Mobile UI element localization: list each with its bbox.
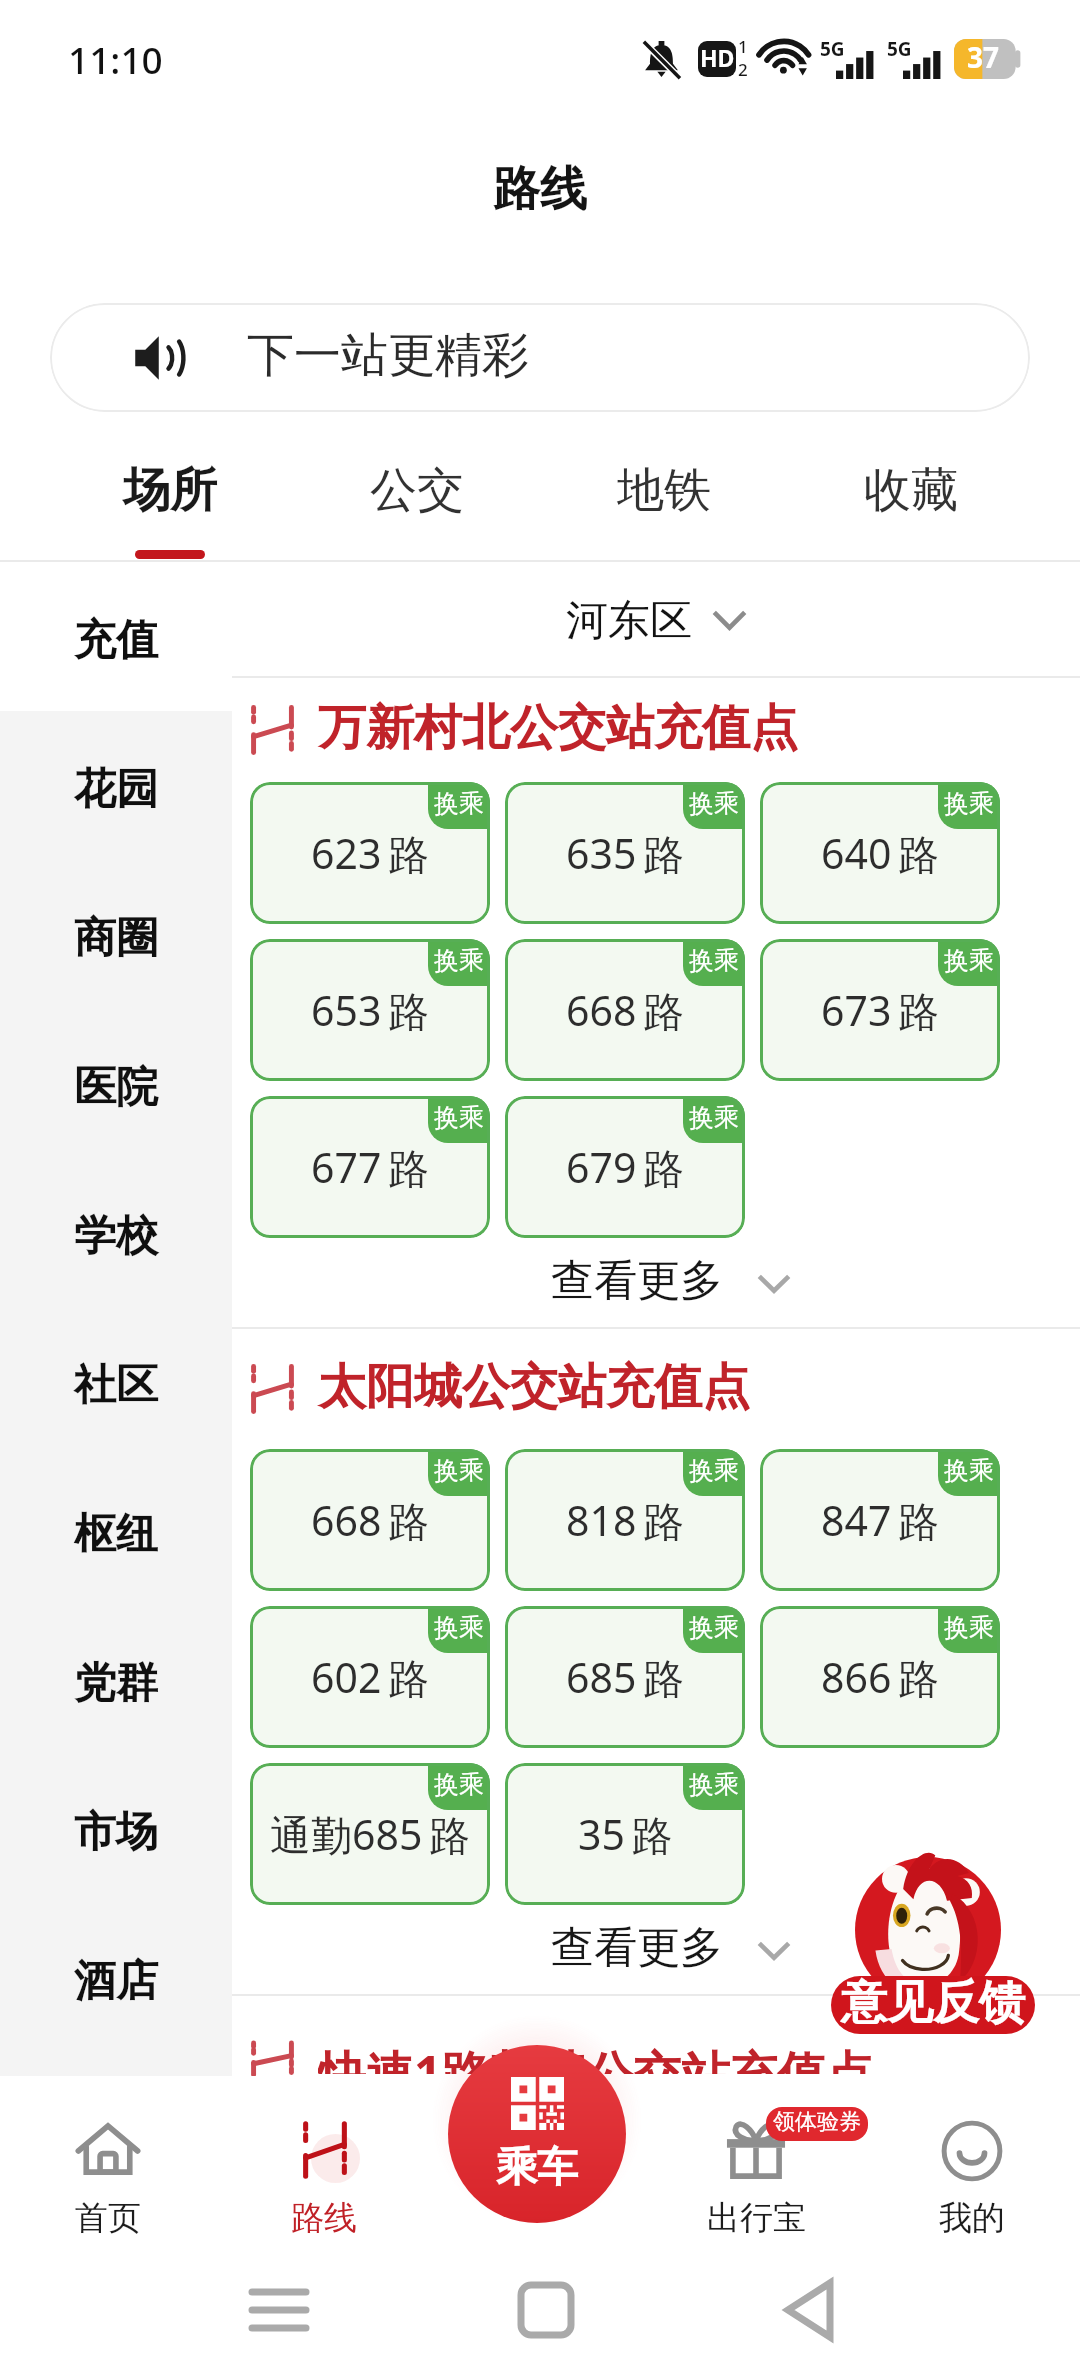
staticText: 换乘 [944, 1612, 994, 1643]
button[interactable]: 路线 [216, 2076, 432, 2258]
staticText: 换乘 [434, 1102, 484, 1133]
staticText: 快速1路某某公交站充值点 [318, 2040, 874, 2074]
staticText: 换乘 [689, 1769, 739, 1800]
staticText: 换乘 [689, 1612, 739, 1643]
button[interactable]: 换乘 [505, 1096, 745, 1238]
button[interactable]: 换乘 [760, 1606, 1000, 1748]
staticText: 866 路 [821, 1649, 940, 1705]
button[interactable]: 换乘 [505, 1763, 745, 1905]
staticText: 602 路 [311, 1649, 430, 1705]
button[interactable]: 换乘 [250, 1763, 490, 1905]
staticText: 35 路 [578, 1806, 673, 1862]
button[interactable]: 换乘 [250, 939, 490, 1081]
button[interactable]: 换乘 [250, 782, 490, 924]
staticText: 出行宝 [707, 2197, 806, 2239]
staticText: 领体验券 [773, 2108, 861, 2136]
button[interactable]: 换乘 [250, 1096, 490, 1238]
staticText: 换乘 [434, 1612, 484, 1643]
staticText: 677 路 [311, 1139, 430, 1195]
staticText: 换乘 [434, 1769, 484, 1800]
button[interactable]: 换乘 [760, 1449, 1000, 1591]
button[interactable]: 场所 [47, 412, 293, 560]
button[interactable]: 换乘 [505, 939, 745, 1081]
staticText: 640 路 [821, 825, 940, 881]
staticText: 下一站更精彩 [247, 326, 529, 385]
button[interactable]: 医院 [0, 1009, 232, 1158]
button[interactable]: 领体验券 [766, 2107, 868, 2141]
button[interactable]: 查看更多 [551, 1256, 791, 1310]
staticText: 公交 [370, 461, 464, 520]
staticText: 路线 [291, 2197, 357, 2239]
button[interactable]: 换乘 [250, 1449, 490, 1591]
button[interactable]: 酒店 [0, 1903, 232, 2052]
staticText: 11:10 [68, 34, 163, 84]
staticText: 635 路 [566, 825, 685, 881]
staticText: 5G [820, 36, 845, 62]
staticText: 换乘 [434, 1455, 484, 1486]
button[interactable]: 河东区 [566, 593, 747, 646]
staticText: 党群 [74, 1657, 158, 1710]
staticText: 673 路 [821, 982, 940, 1038]
button[interactable]: 意见反馈 [828, 1856, 1038, 2034]
staticText: 换乘 [434, 788, 484, 819]
button[interactable]: 换乘 [505, 782, 745, 924]
button[interactable]: 学校 [0, 1158, 232, 1307]
button[interactable]: 查看更多 [551, 1923, 791, 1977]
staticText: 668 路 [311, 1492, 430, 1548]
staticText: 847 路 [821, 1492, 940, 1548]
staticText: 换乘 [434, 945, 484, 976]
staticText: HD [700, 42, 735, 73]
staticText: 679 路 [566, 1139, 685, 1195]
button[interactable]: 市场 [0, 1754, 232, 1903]
button[interactable]: 商圈 [0, 860, 232, 1009]
staticText: 5G [887, 36, 912, 62]
staticText: 充值 [74, 614, 158, 667]
staticText: 2 [738, 58, 748, 81]
staticText: 场所 [123, 461, 217, 520]
button[interactable]: 花园 [0, 711, 232, 860]
button[interactable]: 换乘 [760, 939, 1000, 1081]
staticText: 623 路 [311, 825, 430, 881]
staticText: 意见反馈 [841, 1976, 1025, 2032]
button[interactable]: 乘车 扫码 [448, 2045, 626, 2223]
staticText: 37 [967, 38, 1000, 76]
staticText: 枢纽 [74, 1508, 158, 1561]
staticText: 首页 [75, 2197, 141, 2239]
staticText: 学校 [74, 1210, 158, 1263]
staticText: 酒店 [74, 1955, 158, 2008]
staticText: 查看更多 [551, 1921, 723, 1975]
button[interactable]: 换乘 [250, 1606, 490, 1748]
staticText: 乘车 [496, 2142, 578, 2194]
button[interactable]: 地铁 [540, 412, 787, 560]
button[interactable]: 社区 [0, 1307, 232, 1456]
button[interactable]: 党群 [0, 1605, 232, 1754]
staticText: 收藏 [864, 461, 958, 520]
button[interactable]: 换乘 [760, 782, 1000, 924]
staticText: 查看更多 [551, 1254, 723, 1308]
staticText: 路线 [493, 160, 587, 219]
staticText: 换乘 [689, 788, 739, 819]
button[interactable]: 首页 [0, 2076, 216, 2258]
staticText: 653 路 [311, 982, 430, 1038]
button[interactable]: 充值 [0, 562, 232, 711]
staticText: 河东区 [566, 595, 692, 648]
button[interactable]: 下一站更精彩 [50, 303, 1030, 412]
button[interactable]: 我的 [864, 2076, 1080, 2258]
staticText: 通勤685 路 [270, 1806, 471, 1862]
staticText: 医院 [74, 1061, 158, 1114]
staticText: 我的 [939, 2197, 1005, 2239]
staticText: 换乘 [944, 945, 994, 976]
button[interactable]: 换乘 [505, 1606, 745, 1748]
staticText: 商圈 [74, 912, 158, 965]
button[interactable]: 出行宝 [648, 2076, 864, 2258]
staticText: 685 路 [566, 1649, 685, 1705]
button[interactable]: 公交 [293, 412, 540, 560]
staticText: 换乘 [689, 945, 739, 976]
staticText: 1 [738, 35, 748, 58]
button[interactable]: 枢纽 [0, 1456, 232, 1605]
staticText: 市场 [74, 1806, 158, 1859]
staticText: 地铁 [617, 461, 711, 520]
staticText: 818 路 [566, 1492, 685, 1548]
button[interactable]: 换乘 [505, 1449, 745, 1591]
button[interactable]: 收藏 [787, 412, 1034, 560]
